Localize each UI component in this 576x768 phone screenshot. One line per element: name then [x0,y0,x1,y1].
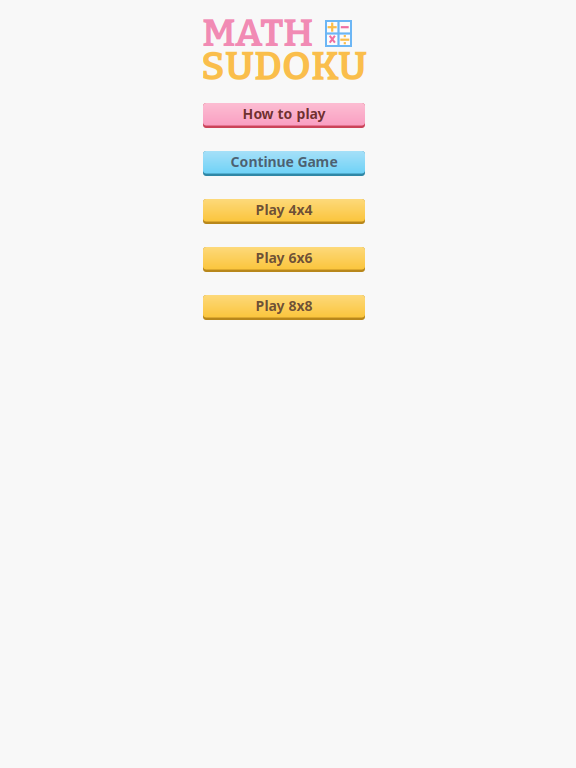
staticText: Continue Game [230,152,337,171]
button[interactable]: How to play [203,103,365,128]
button[interactable]: Play 4x4 [203,199,365,224]
button[interactable]: Play 6x6 [203,247,365,272]
staticText: MATH [202,10,313,56]
staticText: How to play [242,104,325,123]
staticText: SUDOKU [201,43,367,90]
staticText: Play 8x8 [255,296,312,315]
button[interactable]: Play 8x8 [203,295,365,320]
staticText: Play 6x6 [255,248,312,267]
button[interactable]: Continue Game [203,151,365,176]
staticText: Play 4x4 [255,200,312,219]
